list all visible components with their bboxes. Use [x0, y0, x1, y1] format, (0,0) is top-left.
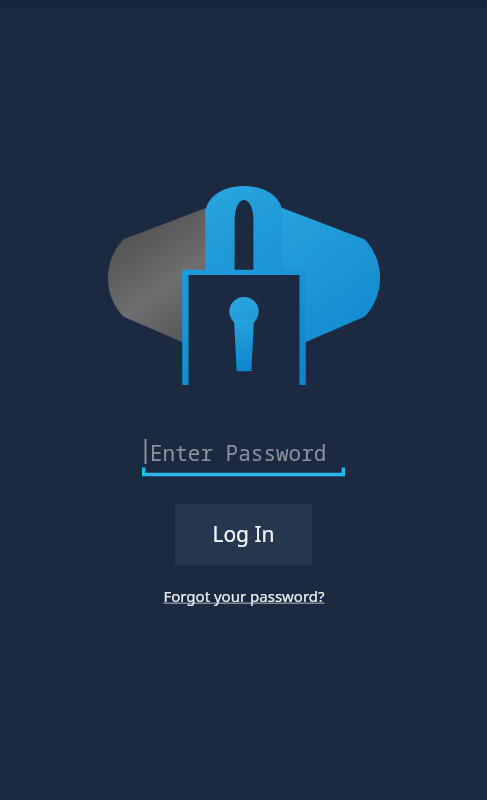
staticText: Enter Password	[150, 439, 327, 468]
button[interactable]: Log In	[175, 504, 312, 565]
staticText: Log In	[212, 520, 275, 549]
staticText: Forgot your password?	[163, 586, 325, 606]
other: App logo	[109, 170, 379, 385]
button[interactable]: Forgot your password?	[157, 582, 331, 610]
button[interactable]: Enter Password	[142, 433, 345, 477]
